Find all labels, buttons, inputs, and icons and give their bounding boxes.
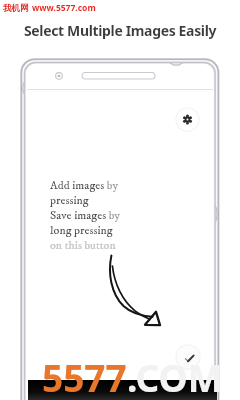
staticText: .COM xyxy=(127,352,223,400)
button[interactable]: Settings xyxy=(175,107,200,132)
staticText: on this button xyxy=(50,238,116,253)
staticText: www.5577.com xyxy=(32,2,96,14)
staticText: 5577 xyxy=(42,352,127,400)
staticText: 我机网 xyxy=(3,3,29,14)
staticText: long pressing xyxy=(50,223,113,238)
staticText: Save images by xyxy=(50,208,121,223)
staticText: Add images by xyxy=(50,178,119,193)
button[interactable]: Add images xyxy=(175,344,201,370)
staticText: Select Multiple Images Easily xyxy=(24,21,217,40)
staticText: pressing xyxy=(50,193,89,208)
